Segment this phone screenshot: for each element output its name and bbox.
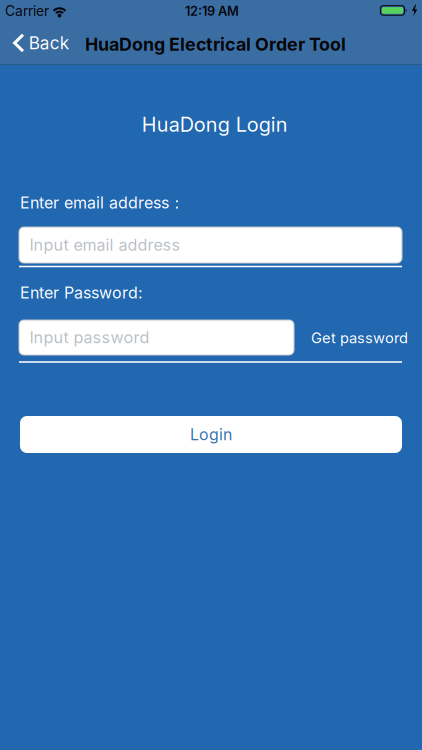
staticText: Login [190, 425, 232, 444]
staticText: 12:19 AM [185, 3, 239, 19]
staticText: Input password [19, 328, 139, 347]
button[interactable]: Login [20, 416, 402, 453]
staticText: Input email address [19, 235, 170, 255]
button[interactable]: Get password [311, 329, 408, 347]
staticText: Enter Password: [20, 283, 143, 302]
staticText: Enter email address： [20, 193, 185, 213]
textField[interactable]: Input password [19, 328, 294, 347]
staticText: Input password [29, 328, 149, 347]
textField[interactable]: Input email address [19, 235, 402, 255]
staticText: HuaDong Login [142, 112, 288, 136]
staticText: Back [29, 33, 69, 53]
staticText: Get password [311, 329, 408, 347]
staticText: HuaDong Electrical Order Tool [85, 33, 346, 55]
button[interactable]: Back [13, 33, 69, 53]
staticText: Input email address [29, 235, 180, 255]
staticText: Carrier [5, 3, 49, 19]
